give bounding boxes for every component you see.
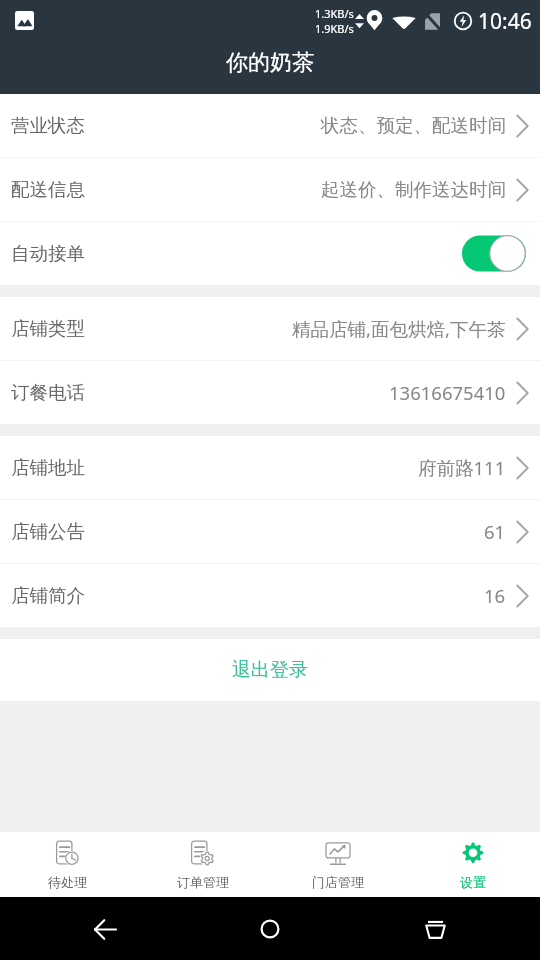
- button[interactable]: 店铺公告: [0, 500, 540, 563]
- button[interactable]: 退出登录: [0, 639, 540, 701]
- staticText: 订单管理: [177, 874, 229, 890]
- staticText: 状态、预定、配送时间: [321, 114, 506, 137]
- button[interactable]: Back: [87, 911, 123, 947]
- staticText: 16: [484, 583, 506, 608]
- button[interactable]: 自动接单开关: [462, 235, 526, 272]
- staticText: 起送价、制作送达时间: [321, 178, 506, 201]
- button[interactable]: Home: [252, 911, 288, 947]
- staticText: 61: [484, 519, 506, 544]
- staticText: 精品店铺,面包烘焙,下午茶: [292, 316, 506, 341]
- staticText: 店铺公告: [11, 520, 85, 543]
- button[interactable]: 自动接单: [0, 222, 540, 285]
- staticText: 待处理: [48, 874, 87, 890]
- staticText: 府前路111: [418, 455, 506, 480]
- button[interactable]: 店铺类型: [0, 297, 540, 360]
- staticText: 配送信息: [11, 178, 85, 201]
- button[interactable]: 订单管理: [135, 832, 270, 897]
- staticText: 1.9KB/s: [315, 21, 354, 36]
- staticText: 营业状态: [11, 114, 85, 137]
- button[interactable]: 设置: [405, 832, 540, 897]
- staticText: 13616675410: [389, 380, 506, 405]
- staticText: 1.3KB/s: [315, 6, 354, 21]
- staticText: 你的奶茶: [226, 49, 314, 77]
- button[interactable]: 门店管理: [270, 832, 405, 897]
- button[interactable]: 营业状态: [0, 94, 540, 157]
- button[interactable]: Recents: [417, 911, 453, 947]
- staticText: 自动接单: [11, 242, 85, 265]
- staticText: 店铺地址: [11, 456, 85, 479]
- button[interactable]: 待处理: [0, 832, 135, 897]
- button[interactable]: 配送信息: [0, 158, 540, 221]
- button[interactable]: 店铺简介: [0, 564, 540, 627]
- staticText: 门店管理: [312, 874, 364, 890]
- staticText: 设置: [460, 874, 486, 890]
- staticText: 退出登录: [232, 658, 308, 682]
- staticText: 10:46: [478, 7, 532, 36]
- staticText: 店铺简介: [11, 584, 85, 607]
- button[interactable]: 订餐电话: [0, 361, 540, 424]
- button[interactable]: 店铺地址: [0, 436, 540, 499]
- staticText: 订餐电话: [11, 381, 85, 404]
- staticText: 店铺类型: [11, 317, 85, 340]
